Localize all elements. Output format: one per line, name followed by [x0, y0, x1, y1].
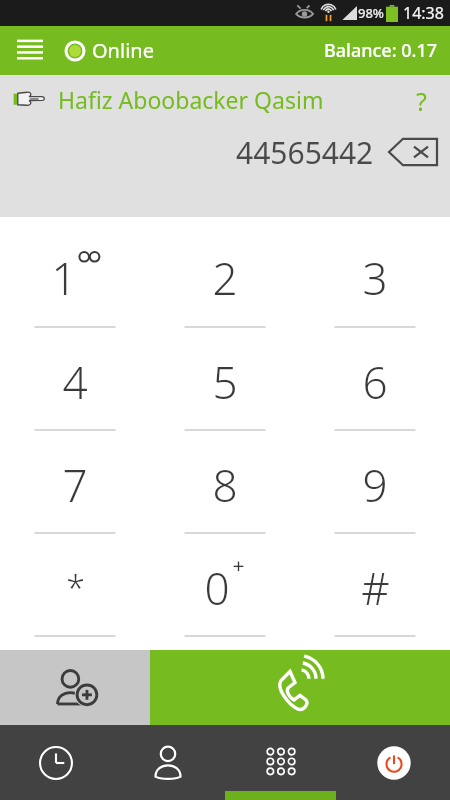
staticText: *: [66, 565, 85, 611]
button[interactable]: 9: [300, 438, 450, 541]
staticText: 44565442: [236, 132, 374, 173]
button[interactable]: 8: [150, 438, 300, 541]
staticText: Online: [92, 37, 154, 64]
staticText: 1: [51, 248, 77, 308]
staticText: 4: [62, 352, 88, 412]
staticText: 0: [204, 558, 230, 618]
button[interactable]: Select contact: [12, 86, 46, 112]
button[interactable]: #: [300, 541, 450, 644]
button[interactable]: Backspace: [386, 132, 440, 172]
button[interactable]: 3: [300, 231, 450, 335]
button[interactable]: Add contact: [0, 650, 150, 725]
button[interactable]: 4: [0, 335, 150, 438]
button[interactable]: Online: [66, 37, 154, 64]
staticText: 5: [212, 352, 238, 412]
staticText: 98%: [358, 4, 384, 22]
button[interactable]: Recent calls: [0, 725, 112, 800]
button[interactable]: 6: [300, 335, 450, 438]
button[interactable]: Hafiz Aboobacker Qasim: [58, 84, 400, 115]
staticText: 14:38: [403, 2, 444, 24]
button[interactable]: 0: [150, 541, 300, 644]
button[interactable]: Call: [150, 650, 450, 725]
staticText: #: [361, 558, 390, 618]
staticText: ?: [416, 84, 427, 114]
button[interactable]: Power: [337, 725, 450, 800]
staticText: 2: [212, 248, 238, 308]
button[interactable]: Dialpad: [224, 725, 337, 800]
button[interactable]: 1: [0, 231, 150, 335]
staticText: 9: [362, 455, 388, 515]
button[interactable]: 2: [150, 231, 300, 335]
button[interactable]: Balance: 0.17: [324, 38, 438, 63]
staticText: 7: [62, 455, 88, 515]
staticText: 6: [362, 352, 388, 412]
button[interactable]: Contacts: [112, 725, 224, 800]
button[interactable]: Help: [406, 84, 436, 114]
staticText: 3: [362, 248, 388, 308]
button[interactable]: Open menu: [8, 29, 52, 73]
staticText: Balance: 0.17: [324, 38, 438, 63]
button[interactable]: 7: [0, 438, 150, 541]
button[interactable]: 5: [150, 335, 300, 438]
button[interactable]: *: [0, 541, 150, 644]
staticText: 8: [212, 455, 238, 515]
